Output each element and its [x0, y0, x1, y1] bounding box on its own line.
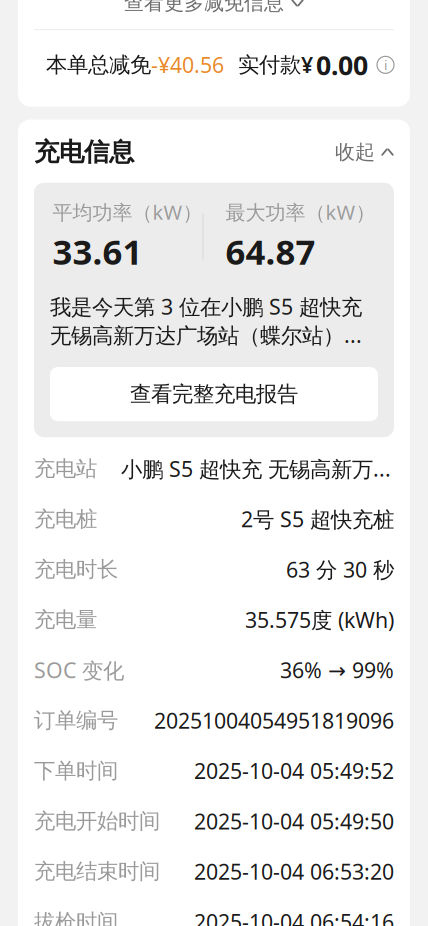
staticText: 63 分 30 秒 [286, 555, 394, 583]
staticText: 2025-10-04 06:53:20 [194, 857, 394, 886]
staticText: i [384, 56, 387, 74]
staticText: 收起 [335, 140, 375, 164]
staticText: 本单总减免 [46, 52, 151, 78]
staticText: 2025-10-04 06:54:16 [194, 908, 394, 926]
staticText: 36% → 99% [280, 656, 394, 684]
staticText: 小鹏 S5 超快充 无锡高新万达广场站（… [121, 454, 394, 483]
staticText: 2025-10-04 05:49:50 [194, 807, 394, 835]
staticText: 充电时长 [34, 556, 118, 582]
staticText: 2025-10-04 05:49:52 [194, 757, 394, 785]
staticText: 平均功率（kW） [52, 199, 202, 225]
staticText: 实付款 [238, 52, 301, 78]
staticText: 查看更多减免信息 [124, 0, 284, 15]
staticText: 35.575度 (kWh) [245, 605, 394, 634]
staticText: 充电桩 [34, 506, 97, 532]
staticText: 64.87 [225, 228, 315, 274]
staticText: 拔枪时间 [34, 909, 118, 926]
staticText: 下单时间 [34, 758, 118, 784]
button[interactable]: 查看更多减免信息 [34, 0, 394, 24]
staticText: 充电开始时间 [34, 808, 160, 834]
staticText: 充电结束时间 [34, 858, 160, 884]
staticText: -¥40.56 [151, 51, 224, 79]
staticText: 20251004054951819096 [154, 706, 394, 735]
staticText: SOC 变化 [34, 656, 124, 684]
button[interactable]: 收起 [335, 140, 394, 164]
staticText: 充电站 [34, 455, 97, 482]
staticText: 我是今天第 3 位在小鹏 S5 超快充 无锡高新万达广场站（蝶尔站）充电 [50, 292, 378, 349]
staticText: 0.00 [316, 47, 368, 82]
staticText: 2号 S5 超快充桩 [241, 505, 394, 533]
staticText: ¥ [301, 51, 313, 79]
staticText: 33.61 [52, 228, 142, 274]
staticText: 最大功率（kW） [225, 199, 375, 225]
staticText: 订单编号 [34, 707, 118, 734]
staticText: 充电量 [34, 607, 97, 633]
button[interactable]: 查看完整充电报告 [50, 367, 378, 421]
staticText: 充电信息 [34, 136, 134, 168]
staticText: 查看完整充电报告 [130, 381, 298, 407]
